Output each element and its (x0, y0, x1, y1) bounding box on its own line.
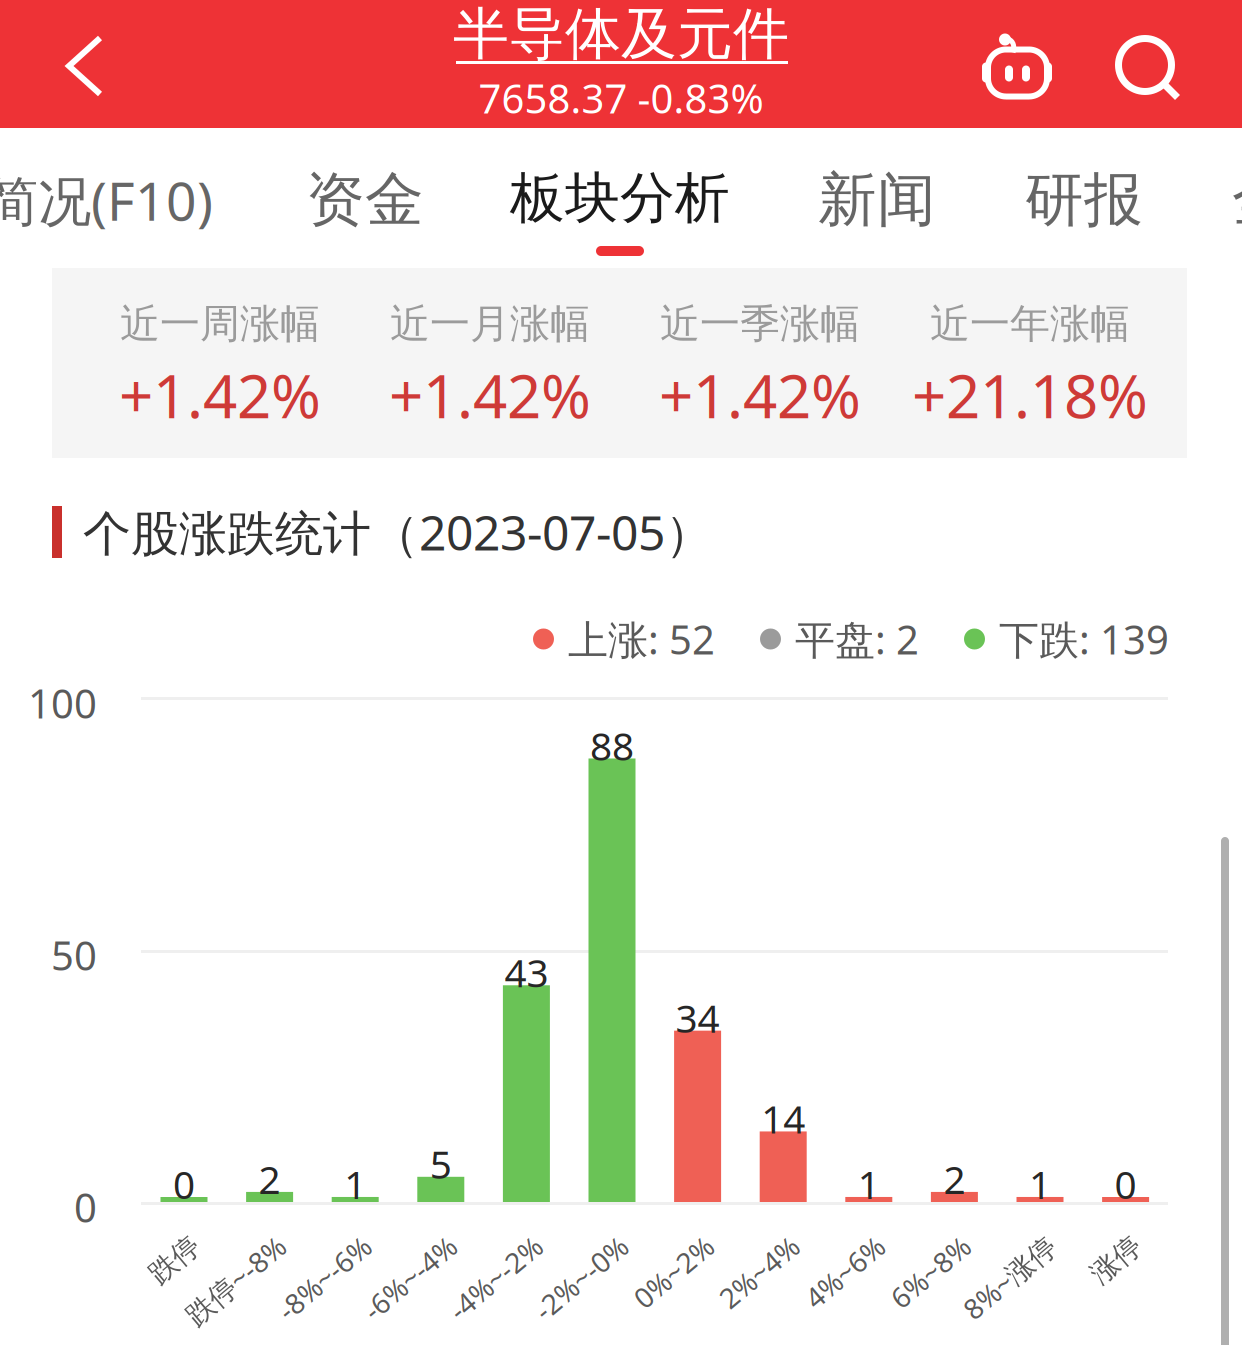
staticText: +1.42% (659, 355, 861, 435)
staticText: 资金 (306, 164, 424, 236)
staticText: 研报 (1025, 164, 1143, 236)
staticText: 5 (430, 1138, 452, 1189)
staticText: 1 (1029, 1158, 1051, 1210)
staticText: 跌停~-8% (190, 1300, 310, 1338)
staticText: 近一月涨幅 (390, 299, 590, 348)
staticText: +1.42% (389, 355, 591, 435)
staticText: 2 (943, 1153, 965, 1204)
staticText: 个股涨跌统计（2023-07-05） (83, 500, 713, 564)
staticText: 0 (74, 1180, 97, 1233)
button[interactable]: Back (33, 14, 137, 118)
staticText: 上涨: 52 (568, 612, 715, 665)
button[interactable]: Search (1101, 21, 1197, 117)
staticText: 平盘: 2 (795, 612, 919, 665)
staticText: 简况(F10) (0, 165, 213, 235)
staticText: 8%~涨停 (969, 1300, 1080, 1338)
staticText: -6%~-4% (369, 1300, 481, 1338)
staticText: 2 (259, 1153, 281, 1204)
staticText: 近一年涨幅 (930, 299, 1130, 348)
staticText: 6%~8% (900, 1300, 994, 1338)
staticText: 新闻 (818, 164, 936, 236)
staticText: 2%~4% (729, 1300, 823, 1338)
staticText: -2%~-0% (540, 1300, 652, 1338)
button[interactable]: AI assistant (969, 17, 1065, 113)
staticText: 板块分析 (510, 164, 730, 231)
staticText: 4%~6% (815, 1300, 909, 1338)
staticText: 0%~2% (644, 1300, 738, 1338)
button[interactable]: 板块分析 (490, 161, 750, 256)
staticText: 7658.37 -0.83% (478, 71, 763, 124)
button[interactable]: 研报 (1004, 152, 1164, 248)
staticText: 14 (761, 1093, 805, 1144)
staticText: 近一季涨幅 (660, 299, 860, 348)
staticText: -8%~-6% (283, 1300, 395, 1338)
staticText: 43 (504, 947, 548, 998)
staticText: 0 (173, 1158, 195, 1210)
staticText: 100 (28, 676, 97, 729)
staticText: 50 (51, 928, 97, 981)
staticText: 34 (676, 992, 720, 1043)
button[interactable]: 简况(F10) (0, 152, 224, 248)
staticText: -4%~-2% (454, 1300, 566, 1338)
staticText: 近一周涨幅 (120, 299, 320, 348)
staticText: +21.18% (912, 355, 1148, 435)
staticText: 跌停 (168, 1302, 224, 1336)
staticText: +1.42% (119, 355, 321, 435)
staticText: 全 (1232, 164, 1242, 236)
staticText: 1 (344, 1158, 366, 1210)
staticText: 0 (1115, 1158, 1137, 1210)
button[interactable]: 资金 (285, 152, 445, 248)
staticText: 88 (590, 720, 634, 771)
button[interactable]: 新闻 (797, 152, 957, 248)
staticText: 1 (858, 1158, 880, 1210)
staticText: 下跌: 139 (999, 612, 1169, 665)
staticText: 半导体及元件 (453, 0, 789, 68)
